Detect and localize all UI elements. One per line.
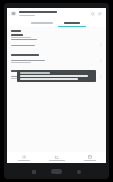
button[interactable] [73, 152, 106, 163]
button[interactable]: More options [98, 58, 104, 64]
button[interactable]: More options [7, 41, 106, 49]
button[interactable]: More options [7, 57, 106, 65]
button[interactable]: More options [7, 73, 106, 81]
button[interactable] [40, 152, 73, 163]
button[interactable] [27, 19, 57, 27]
button[interactable]: Back [77, 170, 81, 174]
button[interactable]: Sort [96, 10, 103, 17]
button[interactable]: More options [98, 42, 104, 48]
button[interactable]: Home [50, 168, 63, 175]
button[interactable] [7, 33, 106, 41]
button[interactable]: Search [89, 10, 96, 17]
button[interactable] [57, 19, 87, 27]
button[interactable]: More options [98, 74, 104, 80]
button[interactable]: Open navigation drawer [10, 10, 17, 17]
button[interactable] [7, 152, 40, 163]
button[interactable] [17, 70, 96, 82]
